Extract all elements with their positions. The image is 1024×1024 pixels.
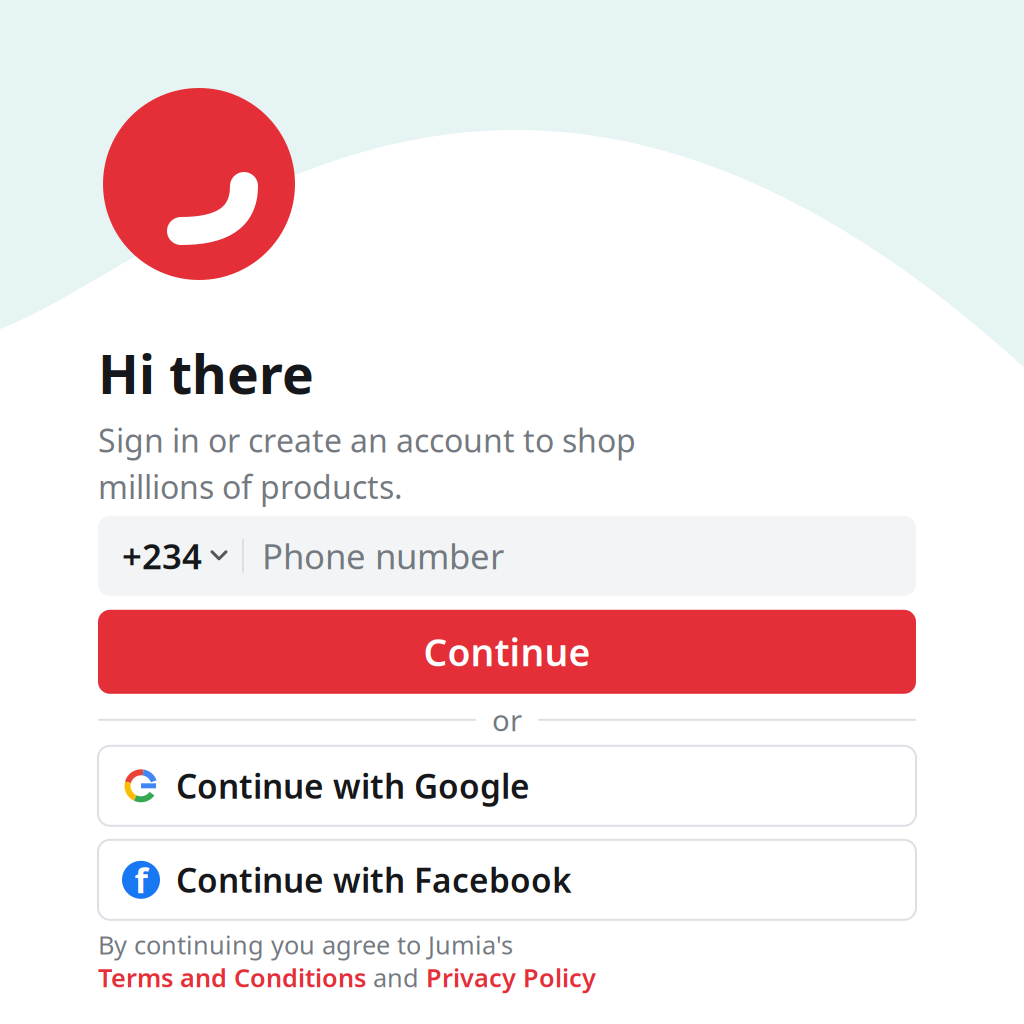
button[interactable]: Phone number <box>244 516 804 596</box>
staticText: or <box>492 700 522 739</box>
button[interactable]: Continue <box>98 610 916 694</box>
button[interactable]: f <box>98 840 916 920</box>
staticText: +234 <box>122 533 202 579</box>
staticText: Continue with Facebook <box>176 858 572 902</box>
button[interactable]: Continue with Google <box>98 746 916 826</box>
staticText: f <box>134 857 147 903</box>
staticText: By continuing you agree to Jumia's <box>98 928 513 961</box>
button[interactable]: Select country code <box>98 516 226 596</box>
staticText: Sign in or create an account to shop <box>98 419 636 461</box>
staticText: Continue with Google <box>176 764 530 808</box>
staticText: and <box>366 961 426 994</box>
staticText: millions of products. <box>98 465 403 508</box>
staticText: Continue <box>423 627 590 677</box>
staticText: Hi there <box>98 338 314 409</box>
staticText: Phone number <box>262 533 504 579</box>
button[interactable]: Terms and Conditions <box>98 964 916 990</box>
staticText: Privacy Policy <box>426 961 596 994</box>
staticText: Terms and Conditions <box>98 961 366 994</box>
